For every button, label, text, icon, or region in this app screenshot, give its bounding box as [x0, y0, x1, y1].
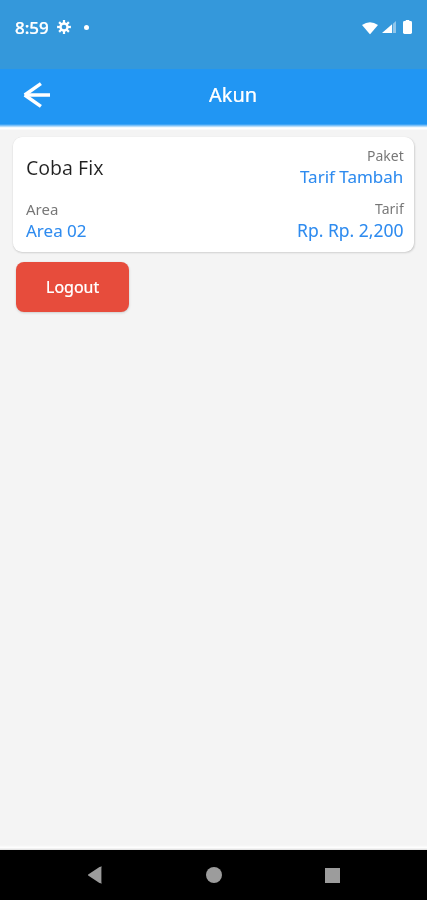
staticText: Tarif Tambah: [300, 165, 404, 188]
staticText: Area: [26, 199, 59, 219]
staticText: Logout: [46, 276, 100, 298]
staticText: Tarif: [375, 199, 404, 218]
button[interactable]: Coba Fix: [13, 137, 414, 252]
button[interactable]: Back: [12, 71, 60, 119]
button[interactable]: Logout: [16, 262, 129, 312]
button[interactable]: Back: [71, 851, 119, 899]
staticText: Rp. Rp. 2,200: [297, 218, 404, 242]
staticText: Coba Fix: [26, 154, 104, 181]
button[interactable]: Recents: [308, 851, 356, 899]
button[interactable]: Home: [190, 851, 238, 899]
staticText: Akun: [209, 81, 258, 108]
staticText: 8:59: [15, 16, 49, 39]
staticText: Paket: [367, 146, 404, 165]
staticText: Area 02: [26, 219, 87, 242]
